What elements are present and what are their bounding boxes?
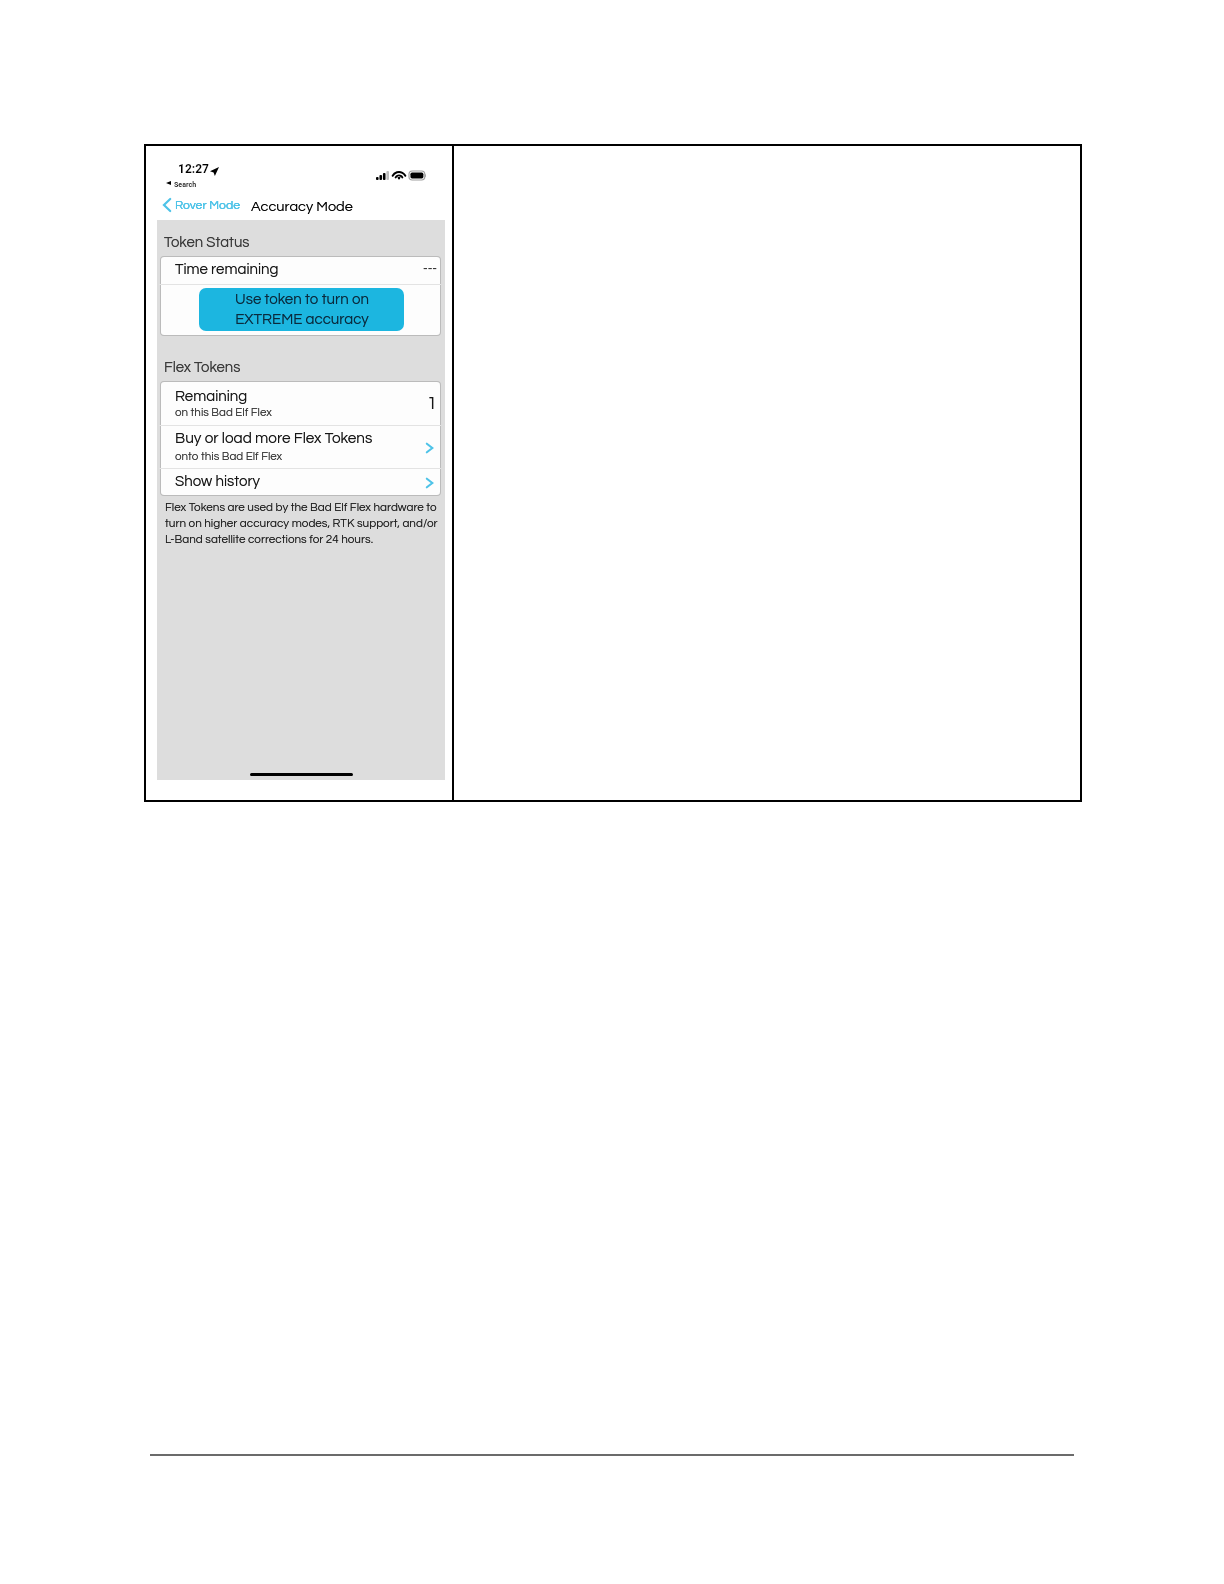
staticText: Use token to turn on EXTREME accuracy — [235, 292, 369, 327]
staticText: Flex Tokens — [164, 360, 241, 375]
button[interactable]: Buy or load more Flex Tokens — [159, 425, 441, 468]
staticText: Remaining — [175, 389, 248, 404]
staticText: --- — [423, 262, 438, 275]
staticText: Search — [174, 180, 197, 188]
staticText: Token Status — [164, 235, 250, 250]
staticText: Accuracy Mode — [251, 199, 353, 214]
staticText: Show history — [175, 474, 261, 489]
staticText: --- — [423, 262, 438, 275]
staticText: onto this Bad Elf Flex — [175, 450, 283, 462]
staticText: Remaining — [175, 389, 248, 404]
staticText: Use token to turn on EXTREME accuracy — [235, 292, 369, 327]
other: Open — [426, 478, 433, 488]
staticText: Flex Tokens are used by the Bad Elf Flex… — [165, 501, 438, 545]
button[interactable]: Remaining — [159, 381, 441, 424]
button[interactable]: Time remaining — [159, 255, 441, 284]
button[interactable]: Use token to turn on EXTREME accuracy — [199, 288, 404, 331]
staticText: on this Bad Elf Flex — [175, 406, 272, 418]
staticText: Time remaining — [175, 262, 279, 277]
staticText: Buy or load more Flex Tokens — [175, 430, 373, 446]
staticText: on this Bad Elf Flex — [175, 406, 272, 418]
staticText: Token Status — [164, 235, 250, 250]
button[interactable]: Show history — [159, 468, 441, 496]
staticText: onto this Bad Elf Flex — [175, 450, 283, 462]
staticText: 1 — [427, 394, 437, 413]
staticText: Accuracy Mode — [251, 199, 353, 214]
staticText: Rover Mode — [175, 199, 240, 212]
staticText: Rover Mode — [175, 199, 240, 212]
staticText: 1 — [427, 394, 437, 413]
other: Open — [426, 443, 433, 453]
button[interactable]: Rover Mode — [161, 194, 245, 216]
staticText: Time remaining — [175, 262, 279, 277]
staticText: 12:27 — [178, 162, 209, 176]
staticText: Flex Tokens — [164, 360, 241, 375]
staticText: Buy or load more Flex Tokens — [175, 430, 373, 446]
staticText: Flex Tokens are used by the Bad Elf Flex… — [165, 501, 438, 545]
staticText: Show history — [175, 474, 261, 489]
